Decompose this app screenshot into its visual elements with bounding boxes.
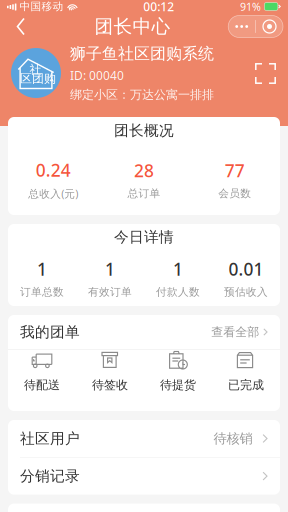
button[interactable]: 待配送	[8, 350, 76, 392]
staticText: 28	[134, 159, 154, 182]
staticText: 狮子鱼社区团购系统	[70, 44, 214, 63]
staticText: 已完成	[228, 378, 264, 392]
staticText: 社	[29, 62, 41, 77]
staticText: 有效订单	[88, 285, 132, 299]
staticText: 区团购	[20, 71, 56, 86]
staticText: 待配送	[24, 378, 60, 392]
staticText: 团长概况	[114, 121, 174, 139]
staticText: 分销记录	[20, 467, 80, 485]
staticText: 总订单	[127, 187, 160, 200]
button[interactable]: More options	[228, 15, 283, 37]
button[interactable]: 分销记录	[8, 458, 280, 495]
button[interactable]: Scan QR code	[253, 61, 277, 85]
staticText: 团长中心	[95, 15, 171, 38]
staticText: 预估收入	[224, 285, 268, 299]
staticText: 付款人数	[156, 285, 200, 299]
button[interactable]: Back	[5, 11, 37, 41]
staticText: 总收入(元)	[28, 186, 78, 201]
staticText: 1	[37, 257, 47, 280]
staticText: 1	[105, 257, 115, 280]
button[interactable]: 待提货	[144, 350, 212, 392]
staticText: 待核销	[213, 430, 252, 447]
staticText: 会员数	[218, 187, 251, 200]
staticText: 待签收	[92, 378, 128, 392]
staticText: ID: 00040	[70, 67, 124, 83]
staticText: 绑定小区：万达公寓一排排	[70, 87, 214, 102]
button[interactable]: 已完成	[212, 350, 280, 392]
button[interactable]: 查看全部	[211, 325, 268, 339]
staticText: 今日详情	[114, 228, 174, 246]
staticText: 查看全部	[211, 325, 259, 339]
staticText: 社区用户	[20, 429, 80, 447]
staticText: 0.01	[228, 257, 263, 280]
staticText: 1	[173, 257, 183, 280]
staticText: 0.24	[36, 158, 71, 181]
staticText: 77	[225, 159, 245, 182]
button[interactable]: 社区用户	[8, 420, 280, 457]
button[interactable]: 待签收	[76, 350, 144, 392]
staticText: 91%	[240, 0, 261, 14]
staticText: 订单总数	[20, 285, 64, 299]
staticText: 00:12	[143, 0, 174, 14]
staticText: 待提货	[160, 378, 196, 392]
staticText: 我的团单	[20, 323, 80, 341]
staticText: 中国移动	[16, 0, 63, 13]
